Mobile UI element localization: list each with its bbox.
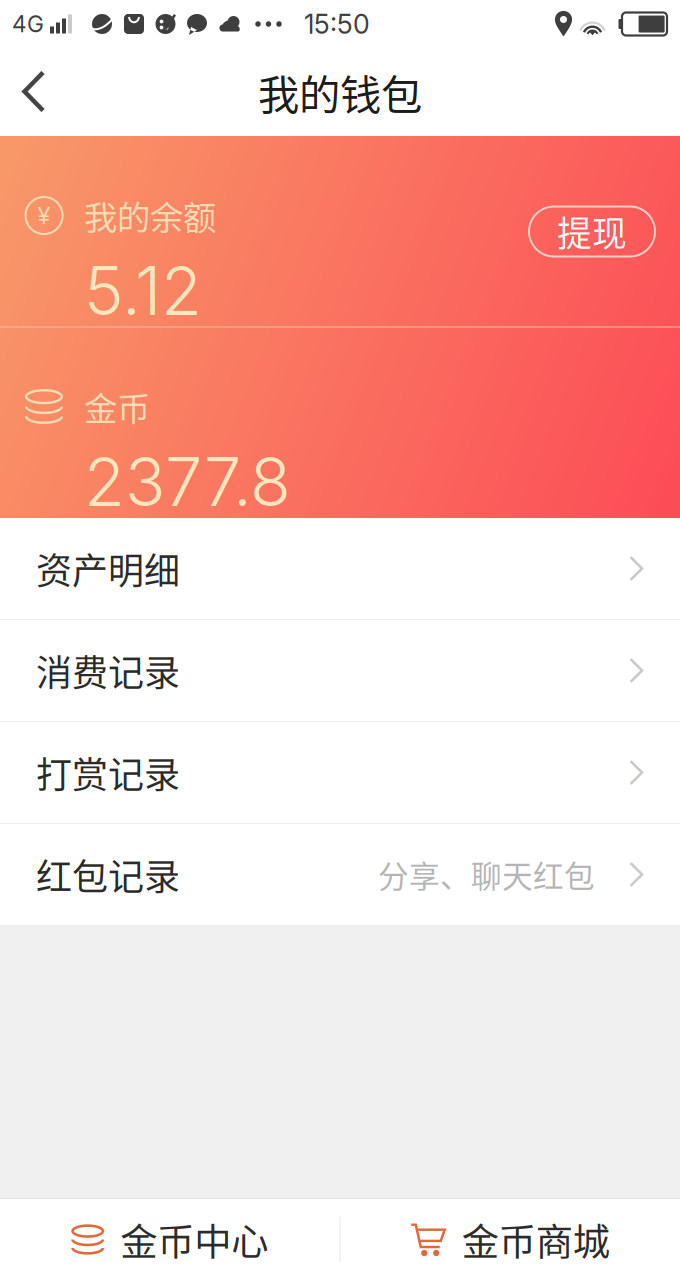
button[interactable]: 资产明细	[0, 518, 680, 620]
staticText: 金币中心	[120, 1212, 268, 1267]
staticText: 2377.8	[84, 441, 291, 522]
staticText: 分享、聊天红包	[378, 852, 595, 897]
staticText: 红包记录	[36, 848, 180, 900]
button[interactable]: 红包记录	[0, 824, 680, 926]
button[interactable]: Back	[0, 48, 68, 136]
staticText: 金币	[84, 382, 150, 431]
staticText: 我的余额	[84, 191, 216, 240]
staticText: 15:50	[304, 8, 370, 40]
staticText: ¥	[37, 201, 50, 230]
button[interactable]: 消费记录	[0, 620, 680, 722]
staticText: 4G	[12, 10, 44, 38]
staticText: 消费记录	[36, 644, 180, 696]
button[interactable]: 打赏记录	[0, 722, 680, 824]
staticText: 金币商城	[462, 1212, 610, 1267]
button[interactable]: 提现	[529, 174, 655, 256]
button[interactable]: 金币商城	[340, 1199, 680, 1280]
staticText: 5.12	[84, 250, 202, 331]
staticText: 提现	[557, 206, 627, 257]
button[interactable]: 金币中心	[0, 1199, 339, 1280]
staticText: 资产明细	[36, 542, 180, 594]
staticText: 我的钱包	[258, 62, 422, 122]
staticText: 打赏记录	[36, 746, 180, 798]
